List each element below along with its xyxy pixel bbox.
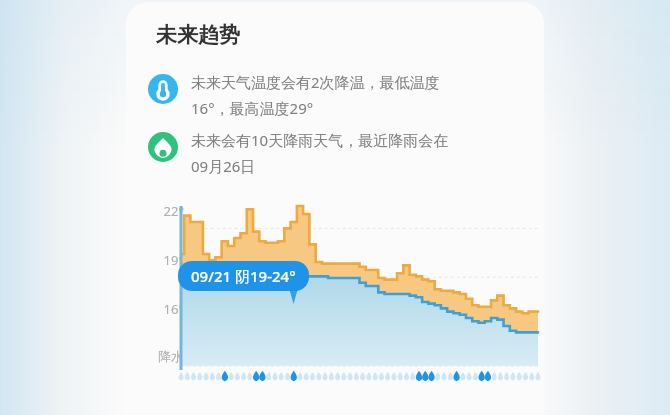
staticText: 22° [144, 202, 184, 220]
button[interactable]: 09/21 阴19-24° [178, 261, 309, 291]
button[interactable]: Rain [148, 130, 526, 176]
staticText: 09/21 阴19-24° [191, 266, 296, 286]
staticText: 19° [144, 251, 184, 269]
staticText: 16° [144, 300, 184, 318]
staticText: 未来天气温度会有2次降温，最低温度 16°，最高温度29° [191, 72, 440, 118]
button[interactable]: 未来趋势 [126, 2, 544, 415]
button[interactable]: Temperature [148, 72, 526, 118]
staticText: 未来会有10天降雨天气，最近降雨会在 09月26日 [191, 130, 449, 176]
staticText: 降水 [144, 348, 184, 364]
other: Temperature [148, 74, 178, 104]
staticText: 未来趋势 [156, 22, 240, 48]
other: Rain [148, 132, 178, 162]
